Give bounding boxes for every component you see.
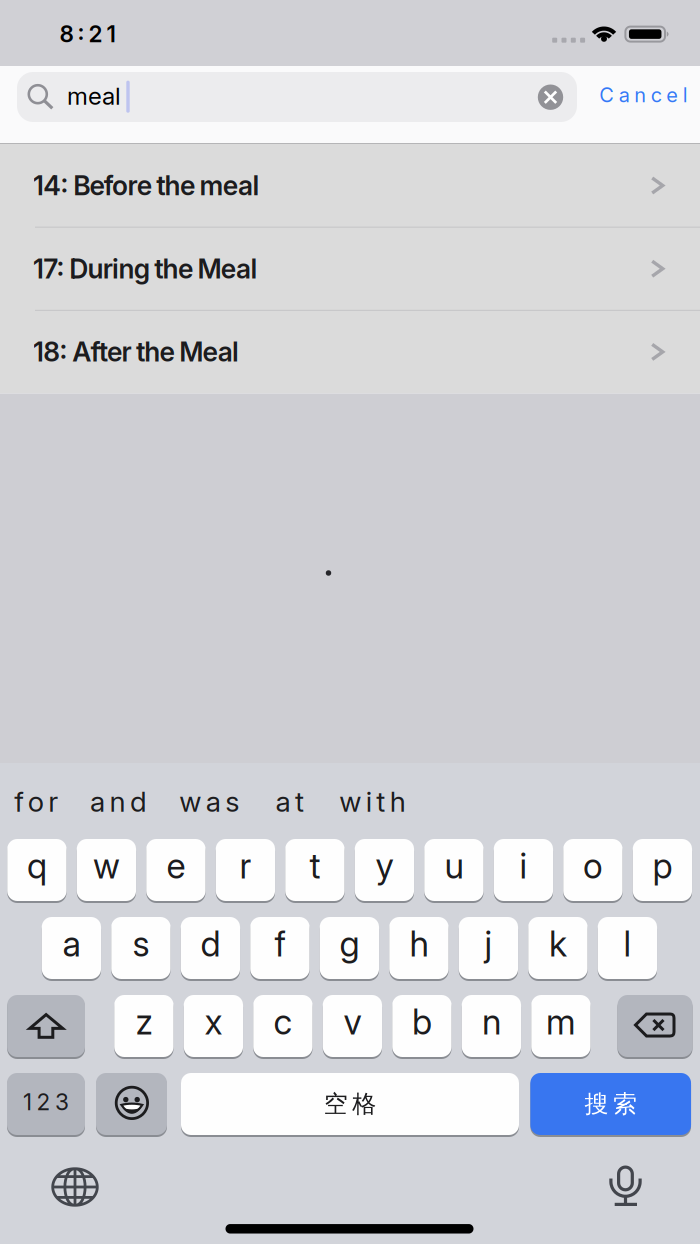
button[interactable]: was bbox=[179, 785, 239, 818]
staticText: t bbox=[309, 846, 320, 886]
button[interactable]: a bbox=[42, 916, 101, 980]
staticText: o bbox=[583, 846, 603, 886]
staticText: d bbox=[200, 924, 220, 964]
button[interactable]: g bbox=[320, 916, 379, 980]
button[interactable]: w bbox=[77, 838, 136, 902]
button[interactable]: with bbox=[339, 785, 406, 818]
button[interactable]: for bbox=[14, 785, 58, 818]
staticText: h bbox=[409, 924, 428, 964]
button[interactable]: 18: After the Meal bbox=[0, 310, 700, 393]
staticText: 搜索 bbox=[584, 1089, 637, 1119]
staticText: with bbox=[339, 785, 406, 818]
staticText: 14: Before the meal bbox=[33, 170, 259, 201]
staticText: r bbox=[239, 846, 251, 886]
staticText: x bbox=[204, 1002, 222, 1042]
staticText: z bbox=[135, 1002, 152, 1042]
staticText: 8:21 bbox=[59, 21, 115, 47]
button[interactable]: l bbox=[598, 916, 657, 980]
button[interactable]: e bbox=[146, 838, 205, 902]
button[interactable]: k bbox=[528, 916, 587, 980]
button[interactable]: Delete bbox=[617, 994, 692, 1058]
button[interactable]: u bbox=[424, 838, 483, 902]
staticText: n bbox=[482, 1002, 501, 1042]
staticText: meal bbox=[67, 82, 121, 110]
button[interactable]: n bbox=[462, 994, 521, 1058]
staticText: Cancel bbox=[599, 83, 688, 107]
staticText: g bbox=[339, 924, 359, 964]
staticText: q bbox=[27, 846, 47, 886]
button[interactable]: 14: Before the meal bbox=[0, 144, 700, 227]
button[interactable]: j bbox=[459, 916, 518, 980]
staticText: m bbox=[546, 1002, 576, 1042]
button[interactable]: r bbox=[216, 838, 275, 902]
button[interactable]: s bbox=[111, 916, 170, 980]
staticText: p bbox=[652, 846, 672, 886]
button[interactable]: y bbox=[355, 838, 414, 902]
staticText: i bbox=[519, 846, 527, 886]
staticText: l bbox=[623, 924, 631, 964]
button[interactable]: d bbox=[181, 916, 240, 980]
button[interactable]: c bbox=[253, 994, 312, 1058]
staticText: f bbox=[274, 924, 285, 964]
button[interactable]: z bbox=[114, 994, 173, 1058]
button[interactable]: b bbox=[392, 994, 451, 1058]
staticText: c bbox=[273, 1002, 292, 1042]
button[interactable]: p bbox=[633, 838, 692, 902]
button[interactable]: t bbox=[285, 838, 344, 902]
button[interactable]: 17: During the Meal bbox=[0, 227, 700, 310]
staticText: w bbox=[93, 846, 120, 886]
staticText: a bbox=[62, 924, 80, 964]
button[interactable]: Clear text bbox=[538, 84, 563, 110]
staticText: u bbox=[444, 846, 463, 886]
staticText: 123 bbox=[23, 1089, 69, 1115]
staticText: s bbox=[132, 924, 149, 964]
staticText: was bbox=[179, 785, 239, 818]
staticText: 空格 bbox=[324, 1089, 376, 1119]
button[interactable]: at bbox=[275, 785, 304, 818]
staticText: k bbox=[549, 924, 567, 964]
button[interactable]: v bbox=[323, 994, 382, 1058]
button[interactable]: and bbox=[90, 785, 147, 818]
staticText: y bbox=[375, 846, 393, 886]
button[interactable]: Shift bbox=[7, 994, 85, 1058]
staticText: e bbox=[166, 846, 185, 886]
staticText: for bbox=[14, 785, 58, 818]
button[interactable]: o bbox=[563, 838, 622, 902]
button[interactable]: 搜索 bbox=[530, 1072, 691, 1136]
button[interactable]: Cancel bbox=[599, 83, 688, 107]
button[interactable]: m bbox=[531, 994, 590, 1058]
button[interactable]: x bbox=[184, 994, 243, 1058]
button[interactable]: Emoji bbox=[96, 1072, 167, 1136]
staticText: 18: After the Meal bbox=[33, 336, 239, 368]
button[interactable]: f bbox=[250, 916, 309, 980]
button[interactable]: q bbox=[7, 838, 66, 902]
button[interactable]: i bbox=[494, 838, 553, 902]
staticText: and bbox=[90, 785, 147, 818]
button[interactable]: 空格 bbox=[181, 1072, 519, 1136]
staticText: at bbox=[275, 785, 304, 818]
staticText: b bbox=[412, 1002, 432, 1042]
button[interactable]: Dictate bbox=[607, 1159, 643, 1209]
button[interactable]: h bbox=[389, 916, 448, 980]
staticText: 17: During the Meal bbox=[33, 253, 257, 284]
button[interactable]: 123 bbox=[7, 1072, 85, 1136]
staticText: j bbox=[484, 924, 492, 964]
staticText: v bbox=[343, 1002, 361, 1042]
button[interactable]: Next keyboard bbox=[49, 1164, 101, 1210]
